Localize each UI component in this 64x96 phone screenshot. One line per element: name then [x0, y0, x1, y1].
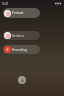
button[interactable]: Unlock [18, 76, 26, 84]
staticText: Podcast [12, 11, 24, 15]
button[interactable]: Podcast [3, 8, 40, 18]
staticText: Bedtime [12, 34, 25, 38]
button[interactable]: Recording [3, 45, 40, 54]
button[interactable]: Bedtime [3, 31, 40, 40]
staticText: Recording [12, 48, 27, 52]
staticText: 9:41 [2, 1, 9, 6]
